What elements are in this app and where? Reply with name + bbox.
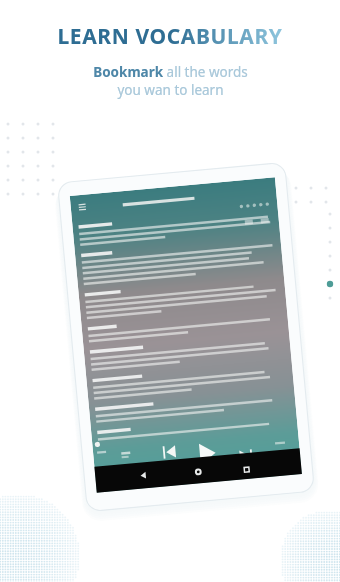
staticText: Bookmark all the words you wan to learn — [93, 63, 248, 99]
staticText: LEARN VOCABULARY — [57, 22, 283, 51]
button[interactable]: Tablet preview of vocabulary reader — [0, 0, 340, 582]
